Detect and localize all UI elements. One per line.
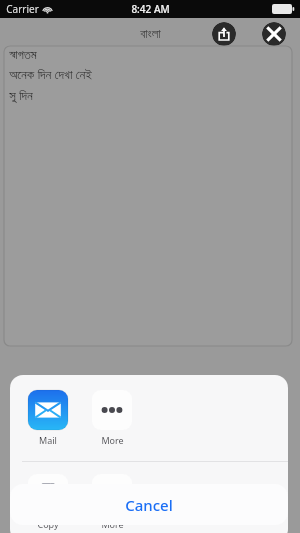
staticText: Carrier <box>6 2 39 16</box>
button[interactable]: More <box>86 472 138 532</box>
staticText: স্বাগতম <box>9 49 37 62</box>
staticText: Mail <box>39 434 57 446</box>
button[interactable]: Share <box>212 22 236 46</box>
staticText: www.indian-languages.com <box>74 511 226 526</box>
staticText: More <box>101 434 124 446</box>
button[interactable]: Cancel <box>10 484 288 525</box>
staticText: বাংলা <box>140 28 161 41</box>
staticText: More <box>101 518 124 530</box>
button[interactable]: More <box>86 388 138 448</box>
button[interactable]: Close <box>262 22 286 46</box>
staticText: 8:42 AM <box>131 2 170 16</box>
button[interactable]: Mail <box>22 388 74 448</box>
staticText: অনেক দিন দেখা নেই <box>9 65 92 83</box>
staticText: Copy <box>37 518 59 530</box>
button[interactable]: Copy <box>22 472 74 532</box>
staticText: সু দিন <box>9 86 33 104</box>
staticText: Cancel <box>125 495 173 515</box>
